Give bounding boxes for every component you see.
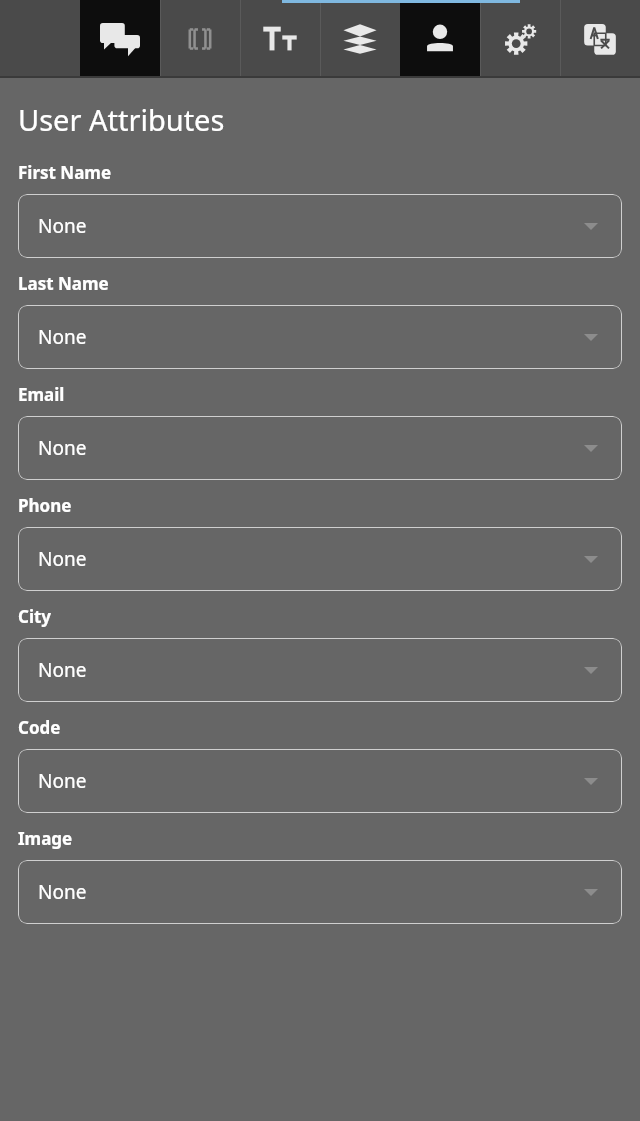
staticText: None <box>38 546 87 572</box>
staticText: Image <box>18 827 73 850</box>
staticText: User Attributes <box>18 100 225 139</box>
button[interactable]: None <box>18 638 622 702</box>
button[interactable]: Settings <box>480 0 560 78</box>
staticText: Code <box>18 716 61 739</box>
staticText: None <box>38 324 87 350</box>
button[interactable]: None <box>18 194 622 258</box>
staticText: None <box>38 879 87 905</box>
button[interactable]: None <box>18 749 622 813</box>
button[interactable]: Translate <box>560 0 640 78</box>
button[interactable]: User attributes <box>400 0 480 78</box>
button[interactable]: Placeholders <box>160 0 240 78</box>
staticText: Last Name <box>18 272 109 295</box>
button[interactable]: Layers <box>320 0 400 78</box>
button[interactable]: Text format <box>240 0 320 78</box>
staticText: Email <box>18 383 65 406</box>
staticText: City <box>18 605 52 628</box>
button[interactable]: None <box>18 527 622 591</box>
staticText: None <box>38 435 87 461</box>
button[interactable]: Messages <box>80 0 160 78</box>
staticText: None <box>38 657 87 683</box>
button[interactable]: None <box>18 305 622 369</box>
staticText: None <box>38 213 87 239</box>
staticText: None <box>38 768 87 794</box>
button[interactable]: None <box>18 416 622 480</box>
staticText: First Name <box>18 161 112 184</box>
staticText: Phone <box>18 494 72 517</box>
button[interactable]: None <box>18 860 622 924</box>
